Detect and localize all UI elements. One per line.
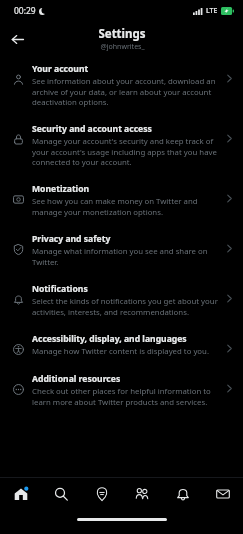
staticText: Privacy and safety (32, 233, 111, 245)
staticText: @johnwrites_ (100, 42, 145, 52)
staticText: Select the kinds of notifications you ge… (32, 296, 218, 317)
staticText: See how you can make money on Twitter an… (32, 196, 218, 217)
staticText: Your account (32, 63, 89, 75)
button[interactable]: Privacy and safety (0, 225, 243, 275)
staticText: Check out other places for helpful infor… (32, 386, 218, 407)
staticText: Settings (98, 26, 146, 42)
staticText: LTE (206, 6, 218, 16)
staticText: Manage how Twitter content is displayed … (32, 346, 209, 357)
button[interactable]: Monetization (0, 175, 243, 225)
staticText: Security and account access (32, 123, 152, 135)
button[interactable]: Notifications (0, 275, 243, 325)
button[interactable]: Grok (85, 479, 118, 509)
staticText: Additional resources (32, 373, 121, 385)
button[interactable]: Your account (0, 55, 243, 115)
staticText: Monetization (32, 183, 90, 195)
staticText: Manage what information you see and shar… (32, 246, 218, 267)
button[interactable]: Home (4, 479, 37, 509)
button[interactable]: Back (5, 27, 29, 51)
button[interactable]: Search (44, 479, 77, 509)
button[interactable]: Accessibility, display, and languages (0, 325, 243, 365)
button[interactable]: Communities (125, 479, 158, 509)
staticText: Manage your account's security and keep … (32, 136, 218, 167)
button[interactable]: Additional resources (0, 365, 243, 415)
staticText: 00:29 (14, 5, 36, 17)
button[interactable]: Messages (206, 479, 239, 509)
staticText: See information about your account, down… (32, 76, 218, 107)
button[interactable]: Notifications (166, 479, 199, 509)
staticText: Notifications (32, 283, 88, 295)
button[interactable]: Security and account access (0, 115, 243, 175)
staticText: Accessibility, display, and languages (32, 333, 187, 345)
